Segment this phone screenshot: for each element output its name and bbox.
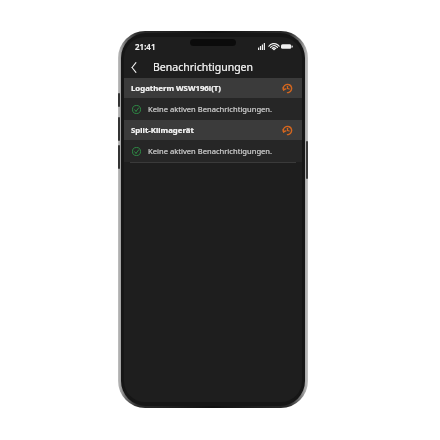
- button[interactable]: Split-Klimagerät: [124, 120, 302, 140]
- staticText: 21:41: [135, 41, 156, 52]
- button[interactable]: Keine aktiven Benachrichtigungen.: [124, 98, 302, 120]
- button[interactable]: Keine aktiven Benachrichtigungen.: [124, 140, 302, 162]
- button[interactable]: Logatherm WSW196i(T): [124, 78, 302, 98]
- staticText: Keine aktiven Benachrichtigungen.: [148, 104, 273, 114]
- staticText: Benachrichtigungen: [153, 60, 254, 74]
- staticText: Keine aktiven Benachrichtigungen.: [148, 146, 273, 156]
- staticText: Split-Klimagerät: [131, 125, 280, 136]
- button[interactable]: Verlauf: [280, 123, 295, 138]
- staticText: Logatherm WSW196i(T): [131, 83, 280, 94]
- button[interactable]: Verlauf: [280, 81, 295, 96]
- button[interactable]: Zurück: [124, 57, 144, 77]
